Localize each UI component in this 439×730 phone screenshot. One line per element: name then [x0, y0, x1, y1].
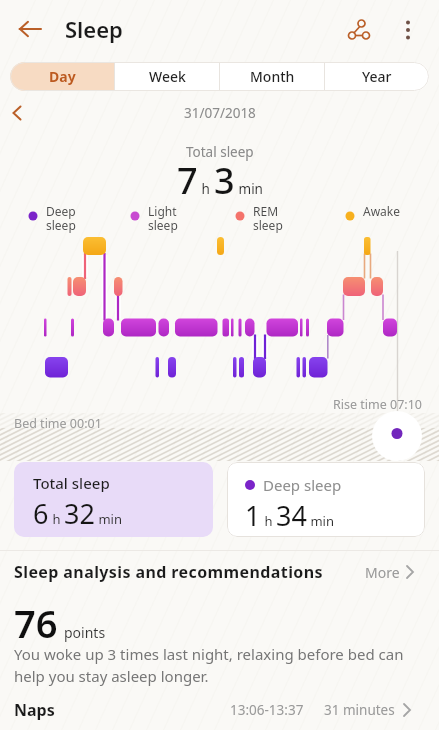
staticText: More [365, 563, 400, 582]
staticText: 31 minutes [324, 701, 395, 719]
button[interactable]: Month [220, 62, 324, 91]
staticText: Day [49, 67, 76, 86]
button[interactable] [335, 6, 383, 54]
staticText: Naps [14, 699, 55, 721]
staticText: Total sleep [33, 473, 110, 493]
button[interactable]: Sleep analysis and recommendations [0, 558, 439, 586]
staticText: 7 [177, 156, 198, 205]
staticText: 34 [276, 497, 307, 534]
staticText: 76 [14, 597, 58, 649]
button[interactable]: Deep sleep [227, 462, 425, 537]
staticText: points [64, 623, 106, 642]
staticText: h [49, 510, 64, 528]
button[interactable] [6, 5, 54, 53]
staticText: Awake [363, 203, 401, 219]
button[interactable]: Naps [0, 694, 439, 726]
staticText: Total sleep [186, 143, 254, 161]
button[interactable] [388, 6, 428, 54]
staticText: REM sleep [253, 203, 283, 234]
staticText: 32 [64, 495, 95, 532]
staticText: Year [362, 67, 392, 86]
staticText: Sleep analysis and recommendations [14, 561, 323, 583]
staticText: 6 [33, 495, 49, 532]
button[interactable]: Year [325, 62, 429, 91]
staticText: Week [149, 67, 186, 86]
staticText: min [95, 510, 122, 528]
button[interactable]: Day [10, 62, 114, 91]
staticText: h [261, 512, 276, 530]
staticText: Sleep [65, 14, 123, 44]
button[interactable] [0, 98, 34, 128]
staticText: min [307, 512, 334, 530]
staticText: Month [250, 67, 295, 86]
staticText: 31/07/2018 [184, 104, 256, 122]
staticText: You woke up 3 times last night, relaxing… [14, 644, 404, 686]
staticText: Bed time 00:01 [14, 415, 102, 432]
staticText: 3 [214, 156, 235, 205]
button[interactable]: Total sleep [14, 462, 213, 537]
staticText: Deep sleep [46, 203, 76, 234]
staticText: h [198, 180, 214, 198]
staticText: min [235, 180, 263, 198]
staticText: 13:06-13:37 [230, 701, 304, 719]
staticText: Light sleep [148, 203, 178, 234]
button[interactable]: Week [115, 62, 219, 91]
staticText: 1 [245, 497, 261, 534]
staticText: Deep sleep [263, 475, 342, 495]
staticText: Rise time 07:10 [333, 396, 422, 413]
